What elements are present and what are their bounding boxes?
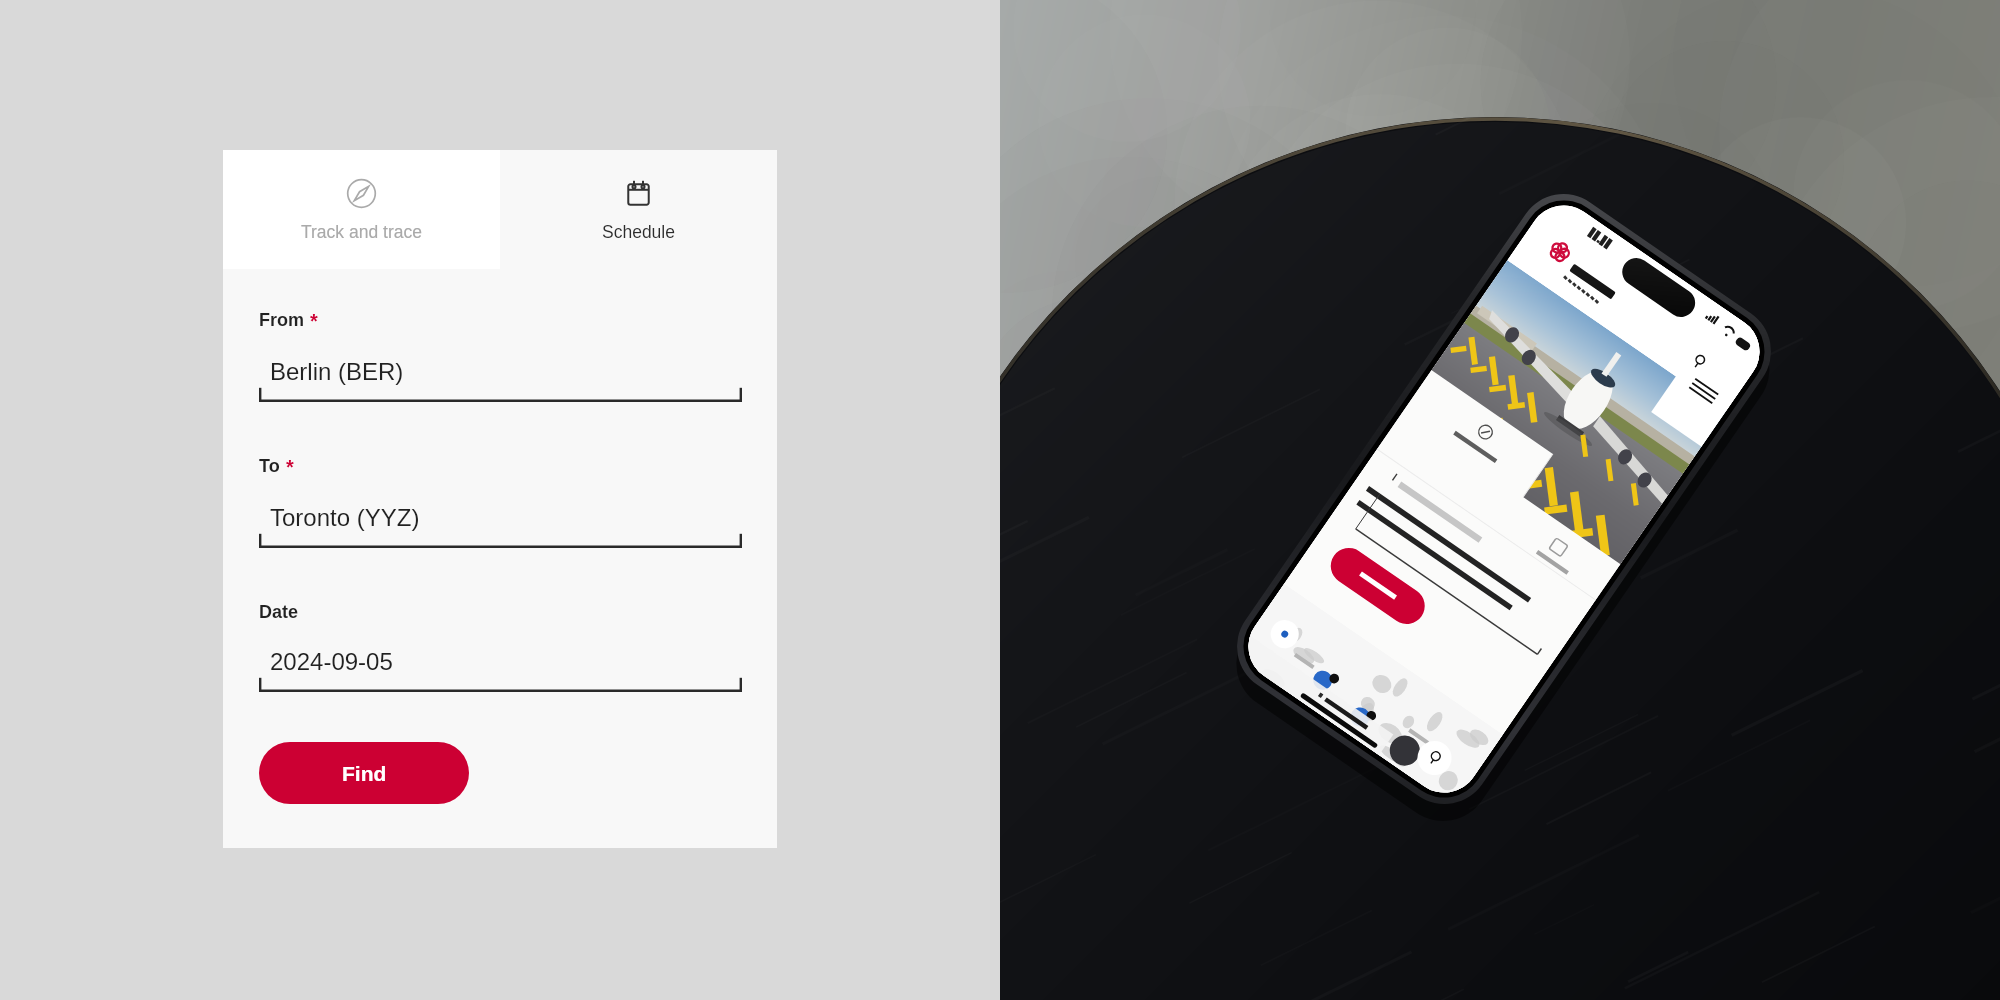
other: Cargolux mobile app shown on a phone [1000, 0, 2000, 1000]
staticText: * [286, 456, 294, 478]
staticText: * [310, 310, 318, 332]
staticText: Berlin (BER) [270, 358, 404, 385]
button[interactable]: Toronto (YYZ) [259, 496, 742, 548]
staticText: Toronto (YYZ) [270, 504, 420, 531]
button[interactable]: Track and trace [223, 150, 500, 269]
staticText: To [259, 456, 280, 476]
button[interactable]: Schedule [500, 150, 777, 269]
staticText: Schedule [602, 222, 675, 242]
button[interactable]: Find [259, 742, 469, 804]
staticText: Track and trace [301, 222, 422, 242]
button[interactable]: 2024-09-05 [259, 640, 742, 692]
staticText: From [259, 310, 304, 330]
button[interactable]: Berlin (BER) [259, 350, 742, 402]
staticText: Find [342, 762, 387, 785]
staticText: 2024-09-05 [270, 648, 393, 675]
staticText: Date [259, 602, 299, 622]
